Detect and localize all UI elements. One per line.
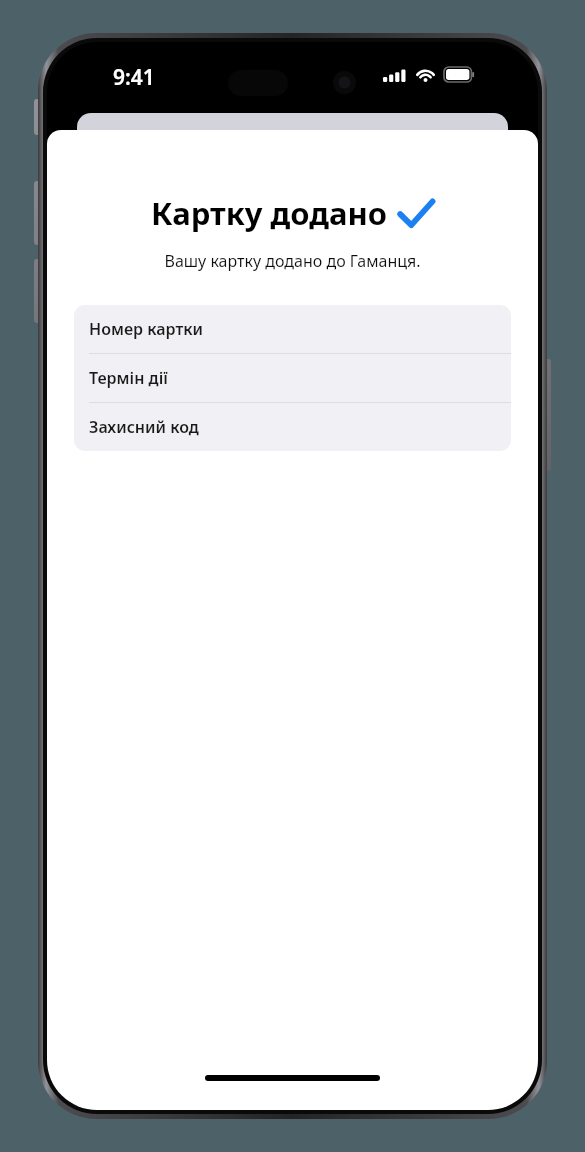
button[interactable]: Захисний код [74,403,511,451]
staticText: Картку додано [151,192,388,234]
staticText: 9:41 [113,63,155,92]
other: Card added [398,199,434,228]
staticText: Термін дії [89,367,168,389]
staticText: Номер картки [89,318,204,340]
button[interactable]: Термін дії [74,354,511,403]
staticText: Захисний код [89,416,199,438]
staticText: Вашу картку додано до Гаманця. [47,250,538,272]
button[interactable]: Номер картки [74,305,511,354]
